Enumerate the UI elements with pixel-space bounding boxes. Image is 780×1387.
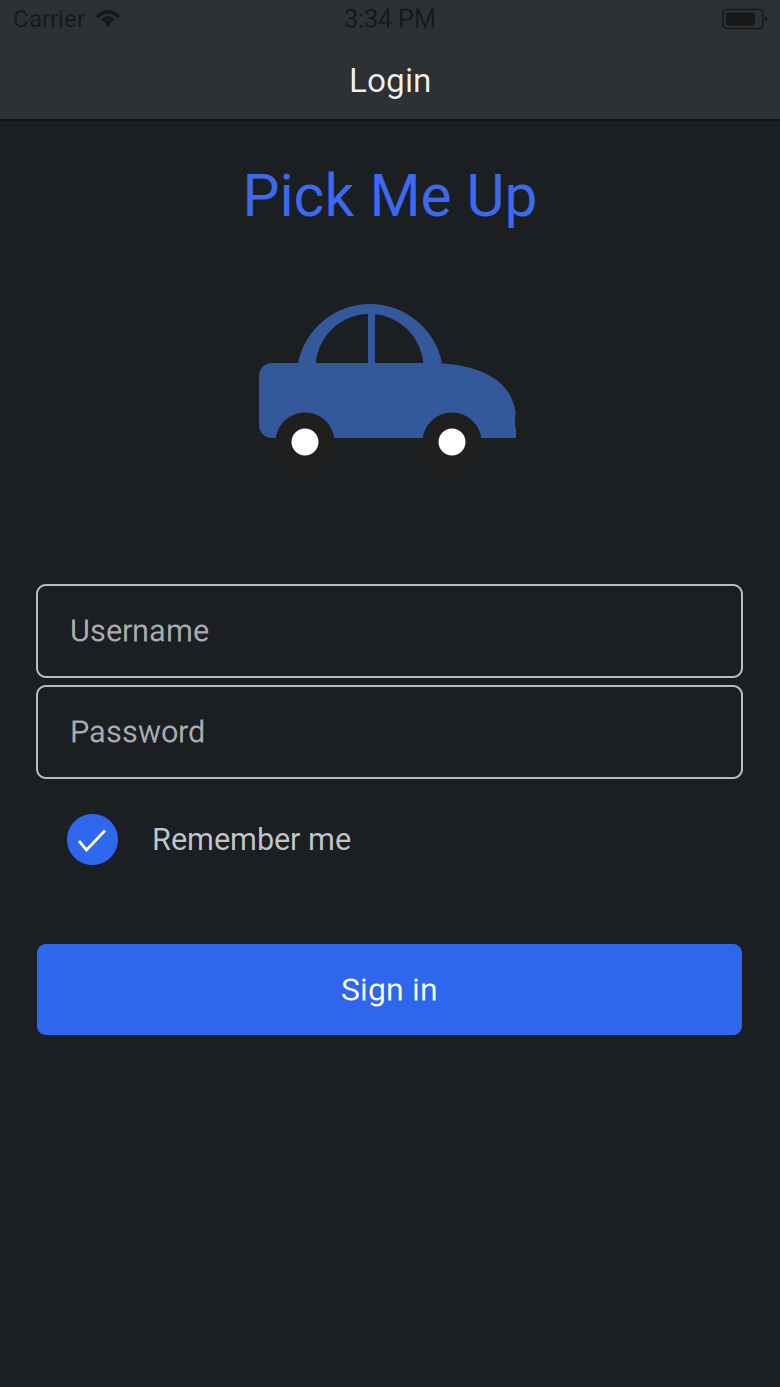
staticText: Sign in: [341, 971, 438, 1008]
staticText: Remember me: [152, 821, 351, 857]
staticText: Username: [70, 613, 209, 649]
staticText: Carrier: [13, 5, 85, 33]
staticText: Login: [349, 61, 431, 100]
button[interactable]: Password: [37, 686, 742, 778]
button[interactable]: Remember me: [67, 814, 772, 865]
button[interactable]: Username: [37, 585, 742, 677]
staticText: Pick Me Up: [242, 162, 537, 230]
staticText: Password: [70, 714, 205, 750]
staticText: 3:34 PM: [344, 4, 436, 34]
button[interactable]: Sign in: [37, 944, 742, 1035]
